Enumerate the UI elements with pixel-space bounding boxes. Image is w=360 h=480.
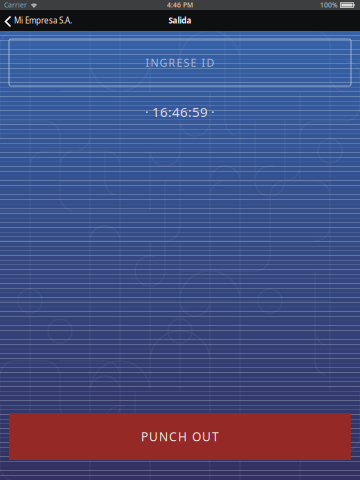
staticText: 100% (320, 1, 338, 9)
staticText: 4:46 PM (167, 1, 193, 9)
button[interactable]: Mi Empresa S.A. (0, 10, 78, 31)
staticText: P U N C H O U T (141, 428, 219, 444)
staticText: I N G R E S E I D (145, 55, 214, 70)
staticText: Carrier (4, 1, 27, 9)
staticText: · 16:46:59 · (145, 103, 215, 121)
button[interactable]: P U N C H O U T (0, 413, 360, 460)
staticText: Mi Empresa S.A. (14, 15, 72, 26)
staticText: Salida (168, 15, 191, 26)
